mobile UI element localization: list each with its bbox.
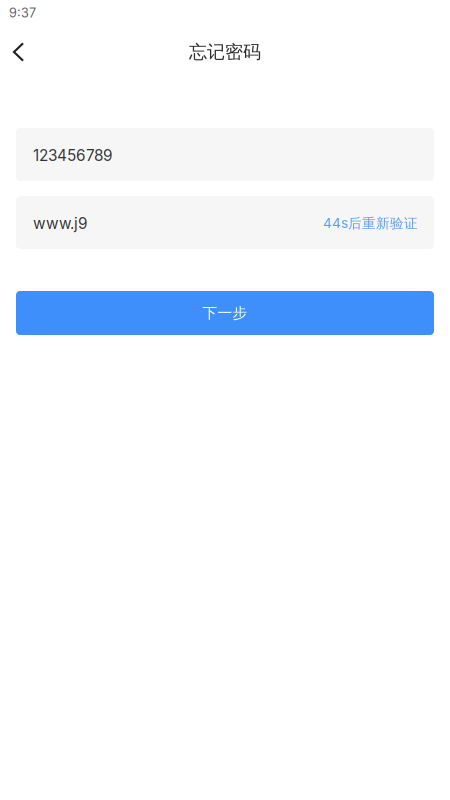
staticText: www.j9 bbox=[33, 214, 88, 233]
staticText: 123456789 bbox=[33, 146, 113, 165]
staticText: 忘记密码 bbox=[189, 41, 261, 63]
staticText: 44s后重新验证 bbox=[323, 215, 418, 232]
staticText: 下一步 bbox=[202, 304, 247, 322]
button[interactable]: 44s后重新验证 bbox=[313, 204, 418, 241]
button[interactable]: 下一步 bbox=[16, 291, 434, 335]
staticText: 9:37 bbox=[9, 5, 36, 21]
button[interactable]: Back bbox=[0, 30, 37, 74]
button[interactable]: 123456789 bbox=[16, 128, 434, 181]
